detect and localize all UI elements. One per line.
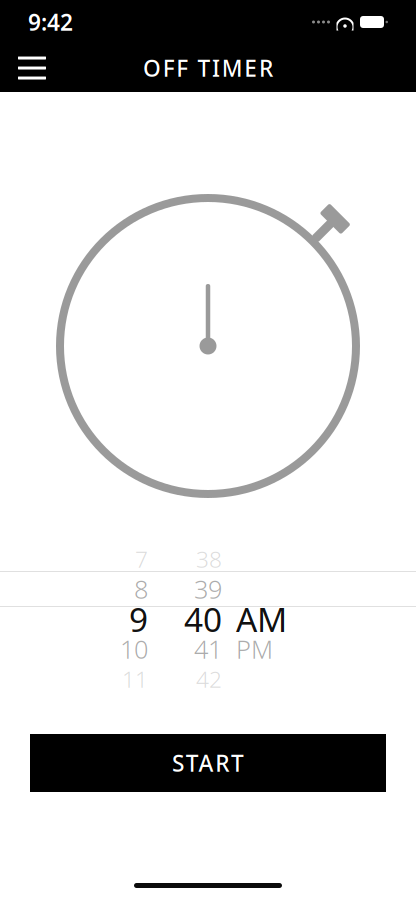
staticText: 7 (135, 544, 148, 574)
staticText: 39 (194, 572, 222, 606)
staticText: 10 (120, 632, 148, 666)
staticText: 8 (134, 572, 148, 606)
staticText: OFF TIMER (143, 53, 273, 83)
staticText: 38 (196, 544, 222, 574)
staticText: 41 (194, 632, 222, 666)
staticText: 9:42 (28, 7, 73, 37)
staticText: 11 (122, 664, 148, 694)
staticText: PM (236, 632, 273, 666)
staticText: 9 (129, 597, 148, 641)
button[interactable]: START (30, 734, 386, 792)
staticText: 42 (196, 664, 222, 694)
staticText: 40 (184, 597, 222, 641)
staticText: AM (236, 597, 287, 641)
staticText: START (172, 748, 244, 778)
button[interactable]: Menu (8, 46, 56, 90)
